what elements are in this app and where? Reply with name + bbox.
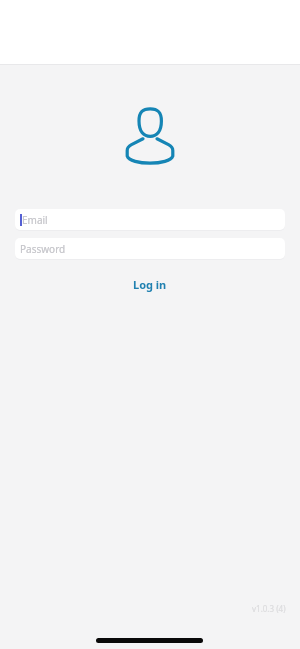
staticText: Password [20, 242, 66, 256]
button[interactable]: Email [15, 209, 285, 230]
button[interactable]: Log in [117, 272, 183, 297]
button[interactable]: Password [15, 238, 285, 259]
other: User avatar [120, 103, 180, 167]
staticText: v1.0.3 (4) [252, 603, 286, 614]
staticText: Log in [133, 277, 167, 292]
staticText: Email [22, 213, 48, 227]
